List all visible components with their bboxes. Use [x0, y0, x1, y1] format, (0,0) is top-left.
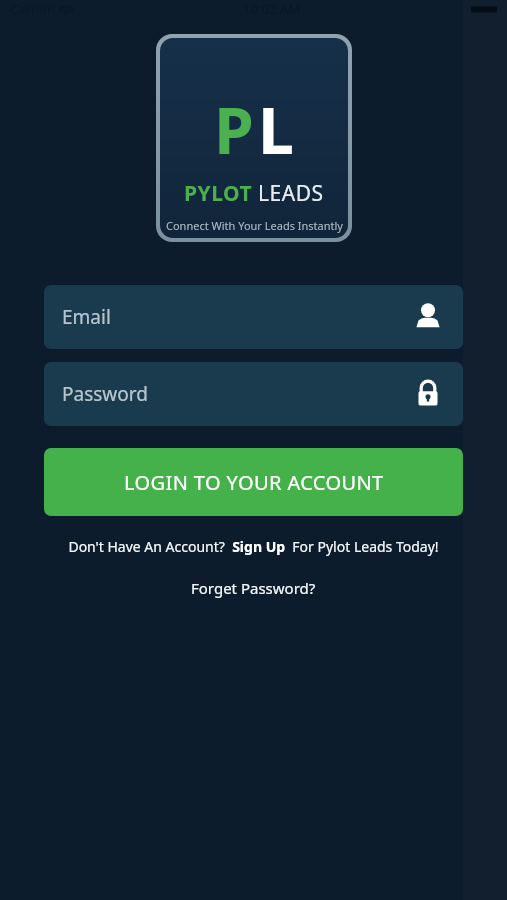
staticText: Don't Have An Account? Sign Up For Pylot…: [68, 537, 439, 556]
staticText: Connect With Your Leads Instantly: [166, 218, 343, 233]
staticText: L: [258, 86, 294, 173]
staticText: Password: [62, 381, 411, 407]
button[interactable]: Forget Password?: [0, 578, 507, 598]
staticText: P: [214, 86, 254, 173]
staticText: LOGIN TO YOUR ACCOUNT: [124, 469, 384, 496]
staticText: Email: [62, 304, 411, 330]
button[interactable]: Password: [44, 362, 463, 426]
other: Password lock: [411, 377, 445, 411]
other: User account: [411, 300, 445, 334]
staticText: PYLOT LEADS: [184, 179, 324, 208]
staticText: Forget Password?: [191, 578, 316, 598]
button[interactable]: Email: [44, 285, 463, 349]
button[interactable]: Don't Have An Account? Sign Up For Pylot…: [0, 537, 507, 556]
button[interactable]: LOGIN TO YOUR ACCOUNT: [44, 448, 463, 516]
